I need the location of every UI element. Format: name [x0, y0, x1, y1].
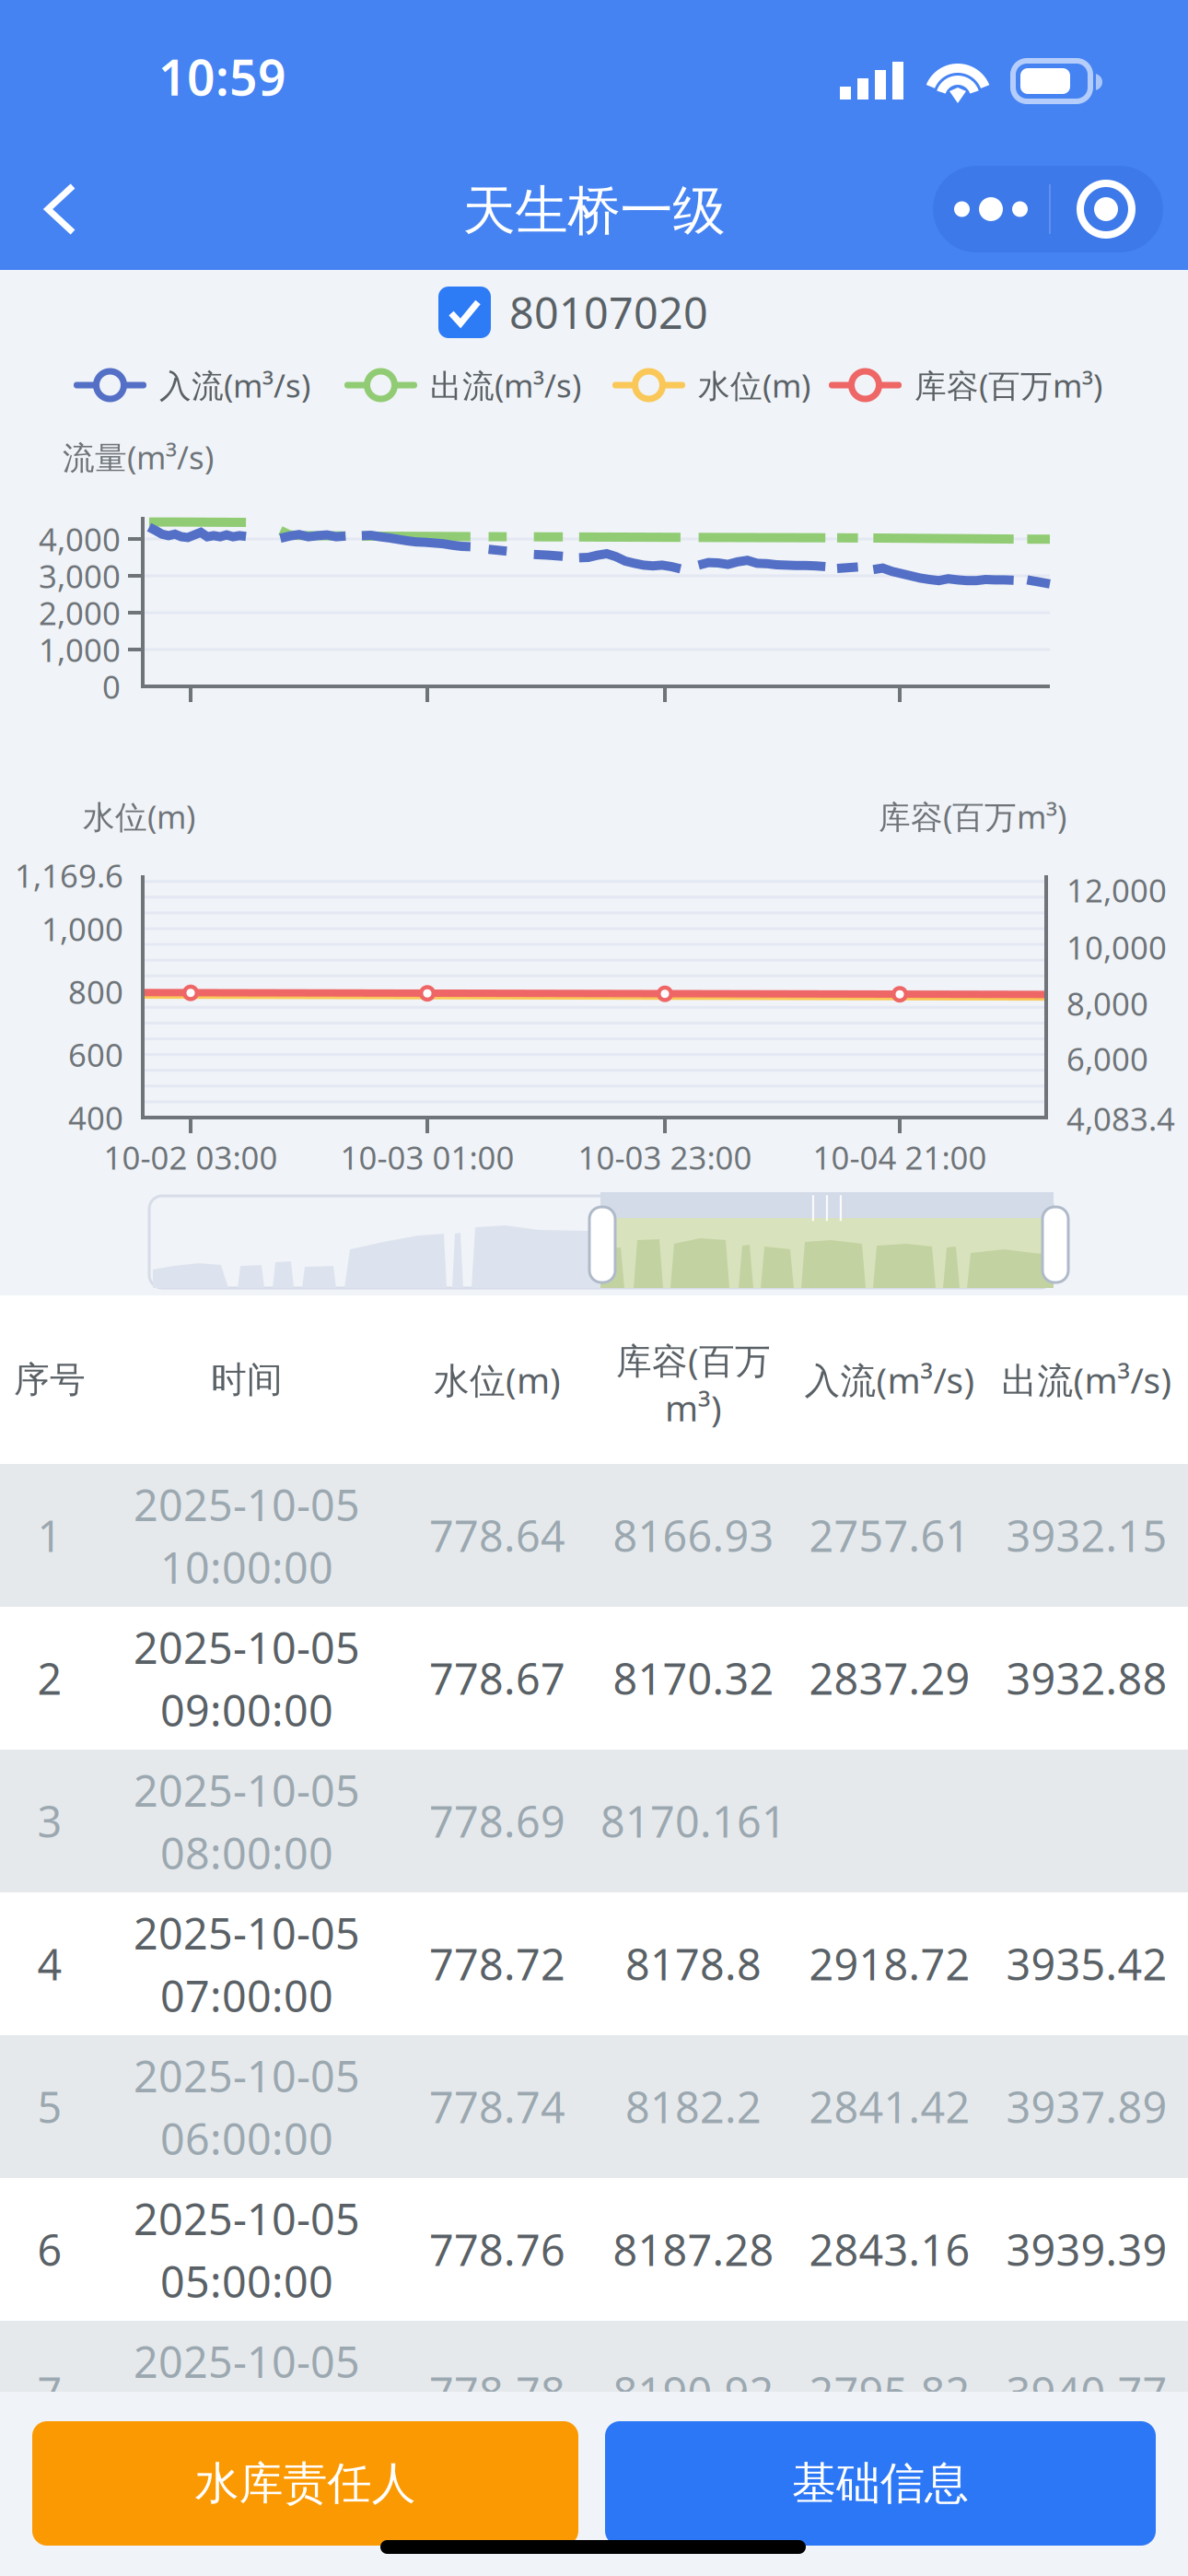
staticText: 04:00:00 — [160, 2395, 333, 2453]
staticText: 4 — [37, 1935, 62, 1992]
staticText: 08:00:00 — [160, 1824, 333, 1881]
staticText: 2025-10-05 — [134, 1619, 360, 1676]
staticText: 1,000 — [41, 907, 123, 950]
staticText: 入流(m³/s) — [804, 1356, 975, 1403]
staticText: 8,000 — [1066, 982, 1148, 1025]
staticText: 3940.77 — [1006, 2364, 1167, 2421]
staticText: 8182.2 — [625, 2078, 762, 2135]
button[interactable]: 6 — [0, 2178, 1188, 2321]
staticText: 8170.161 — [600, 1792, 786, 1850]
staticText: 3939.39 — [1006, 2221, 1167, 2278]
staticText: 3935.42 — [1006, 1935, 1167, 1992]
staticText: 2025-10-05 — [134, 1476, 360, 1533]
staticText: 基础信息 — [792, 2456, 969, 2511]
button[interactable]: 5 — [0, 2035, 1188, 2178]
staticText: 3937.89 — [1006, 2078, 1167, 2135]
staticText: 778.64 — [429, 1507, 565, 1564]
staticText: 入流(m³/s) — [159, 364, 310, 406]
staticText: 4,000 — [39, 518, 121, 560]
staticText: 8187.28 — [613, 2221, 774, 2278]
button[interactable]: More — [933, 166, 1049, 252]
staticText: 8166.93 — [613, 1507, 774, 1564]
staticText: 07:00:00 — [160, 1967, 333, 2024]
staticText: 2841.42 — [809, 2078, 970, 2135]
button[interactable]: 4 — [0, 1892, 1188, 2035]
staticText: m³) — [665, 1384, 722, 1431]
staticText: 3932.15 — [1006, 1507, 1167, 1564]
staticText: 水位(m) — [698, 364, 810, 406]
staticText: 2025-10-05 — [134, 2047, 360, 2104]
staticText: 3 — [37, 1792, 62, 1850]
button[interactable]: 水库责任人 — [32, 2421, 578, 2546]
staticText: 10-04 21:00 — [813, 1136, 987, 1178]
button[interactable]: 基础信息 — [605, 2421, 1156, 2546]
staticText: 8178.8 — [625, 1935, 762, 1992]
staticText: 2025-10-05 — [134, 1762, 360, 1819]
staticText: 778.74 — [429, 2078, 565, 2135]
staticText: 序号 — [14, 1358, 86, 1402]
staticText: 80107020 — [509, 284, 708, 341]
button[interactable]: 1 — [0, 1464, 1188, 1607]
staticText: 1,169.6 — [15, 854, 123, 896]
staticText: 2025-10-05 — [134, 1904, 360, 1961]
staticText: 水位(m) — [434, 1356, 561, 1403]
staticText: 1 — [37, 1507, 62, 1564]
button[interactable]: 7 — [0, 2321, 1188, 2464]
staticText: 2757.61 — [809, 1507, 970, 1564]
staticText: 1,000 — [39, 628, 121, 671]
staticText: 天生桥一级 — [463, 179, 725, 243]
staticText: 8170.32 — [613, 1650, 774, 1707]
staticText: 3932.88 — [1006, 1650, 1167, 1707]
staticText: 7 — [37, 2364, 62, 2421]
staticText: 库容(百万 — [616, 1337, 771, 1384]
staticText: 库容(百万m³) — [914, 364, 1102, 406]
staticText: 2843.16 — [809, 2221, 970, 2278]
staticText: 5 — [37, 2078, 62, 2135]
staticText: 水库责任人 — [195, 2456, 416, 2511]
staticText: 4,083.4 — [1066, 1097, 1175, 1140]
staticText: 12,000 — [1066, 869, 1167, 911]
staticText: 流量(m³/s) — [63, 436, 214, 478]
staticText: 2795.82 — [809, 2364, 970, 2421]
staticText: 10:59 — [158, 44, 286, 109]
button[interactable]: 3 — [0, 1750, 1188, 1892]
staticText: 3,000 — [39, 555, 121, 597]
staticText: 09:00:00 — [160, 1681, 333, 1739]
staticText: 778.78 — [429, 2364, 565, 2421]
staticText: 10,000 — [1066, 926, 1167, 968]
staticText: ||| — [806, 1189, 848, 1221]
staticText: 10-02 03:00 — [104, 1136, 278, 1178]
staticText: 10-03 01:00 — [340, 1136, 514, 1178]
staticText: 778.72 — [429, 1935, 565, 1992]
staticText: 出流(m³/s) — [1002, 1356, 1172, 1403]
staticText: 10-03 23:00 — [578, 1136, 752, 1178]
staticText: 0 — [102, 665, 121, 708]
staticText: 2918.72 — [809, 1935, 970, 1992]
staticText: 778.69 — [429, 1792, 565, 1850]
staticText: 2025-10-05 — [134, 2190, 360, 2247]
button[interactable]: 2 — [0, 1607, 1188, 1750]
staticText: 时间 — [211, 1358, 283, 1402]
staticText: 05:00:00 — [160, 2253, 333, 2310]
staticText: 出流(m³/s) — [430, 364, 581, 406]
staticText: 2025-10-05 — [134, 2333, 360, 2390]
staticText: 水位(m) — [83, 795, 195, 837]
staticText: 400 — [68, 1096, 123, 1139]
staticText: 8190.92 — [613, 2364, 774, 2421]
button[interactable]: Close — [1049, 166, 1163, 252]
staticText: 6,000 — [1066, 1037, 1148, 1080]
staticText: 778.76 — [429, 2221, 565, 2278]
staticText: 10:00:00 — [160, 1539, 333, 1596]
staticText: 2,000 — [39, 591, 121, 634]
staticText: 库容(百万m³) — [879, 795, 1066, 837]
staticText: 778.67 — [429, 1650, 565, 1707]
button[interactable]: Back — [9, 161, 111, 257]
staticText: 6 — [37, 2221, 62, 2278]
staticText: 06:00:00 — [160, 2110, 333, 2167]
staticText: 2 — [37, 1650, 62, 1707]
staticText: 2837.29 — [809, 1650, 970, 1707]
staticText: 800 — [68, 970, 123, 1013]
staticText: 600 — [68, 1033, 123, 1076]
